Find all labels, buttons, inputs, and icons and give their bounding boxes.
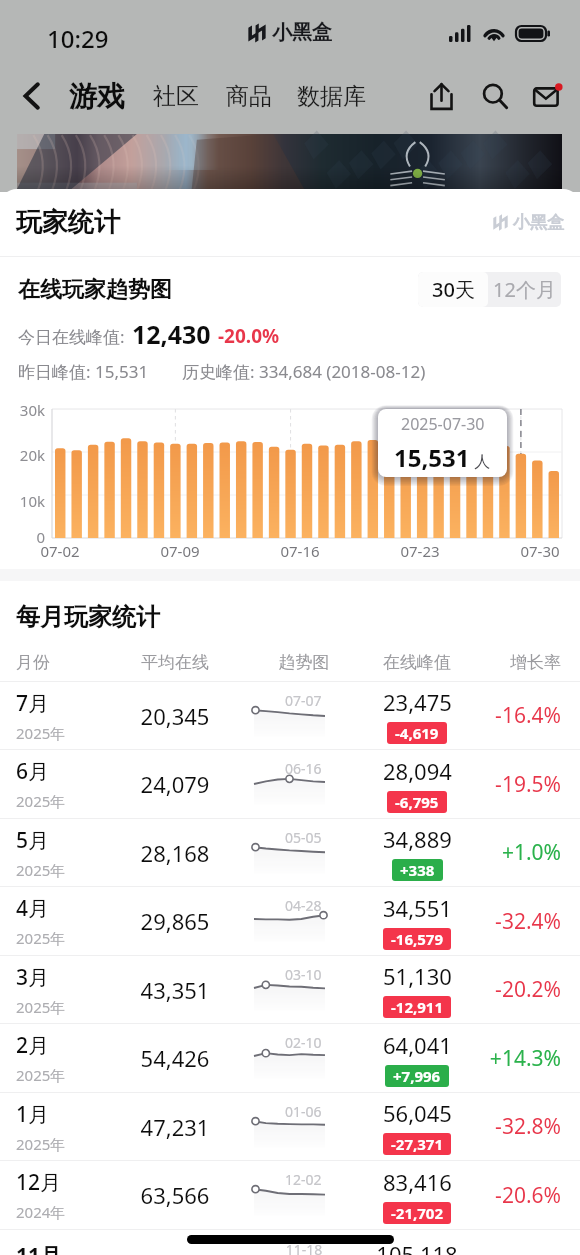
staticText: 07-02 (30, 541, 90, 561)
button[interactable]: 社区 (153, 82, 199, 111)
staticText: 10k (0, 491, 45, 511)
button[interactable]: 1月 (0, 1093, 580, 1160)
staticText: 3月 (16, 963, 50, 992)
staticText: 在线玩家趋势图 (18, 276, 172, 304)
staticText: 11月 (16, 1241, 62, 1255)
staticText: -16,579 (391, 929, 443, 949)
staticText: 51,130 (383, 961, 452, 991)
staticText: 43,351 (110, 975, 240, 1005)
staticText: 趋势图 (240, 652, 368, 673)
staticText: 04-28 (285, 896, 322, 915)
staticText: 64,041 (383, 1030, 452, 1060)
staticText: 63,566 (110, 1180, 240, 1210)
staticText: -4,619 (395, 723, 439, 743)
staticText: 11-18 (240, 1240, 368, 1255)
staticText: +338 (400, 860, 435, 880)
staticText: 月份 (16, 652, 110, 673)
staticText: 30k (0, 400, 45, 420)
staticText: 34,889 (383, 824, 452, 854)
staticText: 2025年 (16, 1065, 66, 1085)
button[interactable]: 4月 (0, 887, 580, 955)
staticText: -32.8% (466, 1112, 561, 1141)
staticText: 54,426 (110, 1043, 240, 1073)
staticText: 01-06 (285, 1102, 322, 1121)
staticText: 7月 (16, 689, 50, 718)
staticText: 06-16 (285, 759, 322, 778)
button[interactable]: Back (12, 77, 50, 115)
staticText: 商品 (226, 82, 272, 111)
staticText: 12个月 (493, 276, 556, 303)
staticText: 10:29 (47, 22, 109, 55)
staticText: 15,531 (394, 441, 470, 474)
button[interactable]: 5月 (0, 819, 580, 886)
staticText: 0 (0, 527, 45, 547)
staticText: 2月 (16, 1031, 50, 1060)
staticText: 2025年 (16, 928, 66, 948)
staticText: -20.2% (466, 975, 561, 1004)
staticText: 07-07 (285, 691, 322, 710)
button[interactable]: Messages (528, 76, 568, 116)
staticText: 07-30 (510, 541, 570, 561)
staticText: 昨日峰值: 15,531 (18, 360, 149, 383)
button[interactable]: 12个月 (488, 272, 561, 307)
staticText: 12-02 (285, 1170, 322, 1189)
staticText: 29,865 (110, 906, 240, 936)
staticText: 07-23 (390, 541, 450, 561)
staticText: 游戏 (69, 79, 125, 114)
staticText: 每月玩家统计 (16, 602, 160, 632)
staticText: 小黑盒 (272, 20, 332, 45)
staticText: 数据库 (297, 82, 366, 111)
button[interactable]: 11月 (0, 1230, 580, 1255)
staticText: -12,911 (391, 997, 443, 1017)
staticText: 03-10 (285, 965, 322, 984)
staticText: 6月 (16, 757, 50, 786)
staticText: 1月 (16, 1100, 50, 1129)
staticText: 2025年 (16, 723, 66, 743)
button[interactable]: 2月 (0, 1024, 580, 1092)
staticText: 玩家统计 (16, 206, 120, 239)
staticText: 24,079 (110, 769, 240, 799)
staticText: 人 (470, 450, 491, 472)
staticText: 2025年 (16, 997, 66, 1017)
staticText: -20.0% (218, 323, 280, 349)
staticText: 30天 (432, 276, 475, 303)
staticText: +7,996 (393, 1066, 441, 1086)
staticText: +14.3% (466, 1044, 561, 1073)
staticText: 4月 (16, 894, 50, 923)
staticText: -32.4% (466, 907, 561, 936)
button[interactable]: Search (475, 76, 515, 116)
staticText: -20.6% (466, 1181, 561, 1210)
staticText: 增长率 (466, 652, 561, 673)
staticText: 2025-07-30 (401, 413, 485, 435)
button[interactable]: 商品 (226, 82, 272, 111)
button[interactable]: 数据库 (297, 82, 366, 111)
staticText: 小黑盒 (513, 212, 564, 233)
staticText: -21,702 (391, 1203, 443, 1223)
button[interactable]: 12月 (0, 1161, 580, 1229)
staticText: 社区 (153, 82, 199, 111)
staticText: 34,551 (383, 893, 452, 923)
staticText: -19.5% (466, 770, 561, 799)
button[interactable]: Share (421, 76, 461, 116)
staticText: 20k (0, 445, 45, 465)
staticText: 28,168 (110, 838, 240, 868)
staticText: 5月 (16, 826, 50, 855)
staticText: 平均在线 (110, 652, 240, 673)
staticText: 2024年 (16, 1202, 66, 1222)
button[interactable]: 3月 (0, 956, 580, 1023)
button[interactable]: 7月 (0, 682, 580, 749)
staticText: 83,416 (383, 1167, 452, 1197)
staticText: 05-05 (285, 828, 322, 847)
staticText: 07-16 (270, 541, 330, 561)
staticText: 20,345 (110, 701, 240, 731)
staticText: 56,045 (383, 1098, 452, 1128)
staticText: 12,430 (132, 317, 211, 351)
staticText: 2025年 (16, 791, 66, 811)
staticText: 47,231 (110, 1112, 240, 1142)
staticText: 105,118 (368, 1239, 466, 1255)
staticText: 23,475 (383, 687, 452, 717)
button[interactable]: 6月 (0, 750, 580, 818)
button[interactable]: 游戏 (69, 79, 125, 114)
button[interactable]: 30天 (418, 272, 488, 307)
staticText: 历史峰值: 334,684 (2018-08-12) (182, 360, 426, 383)
